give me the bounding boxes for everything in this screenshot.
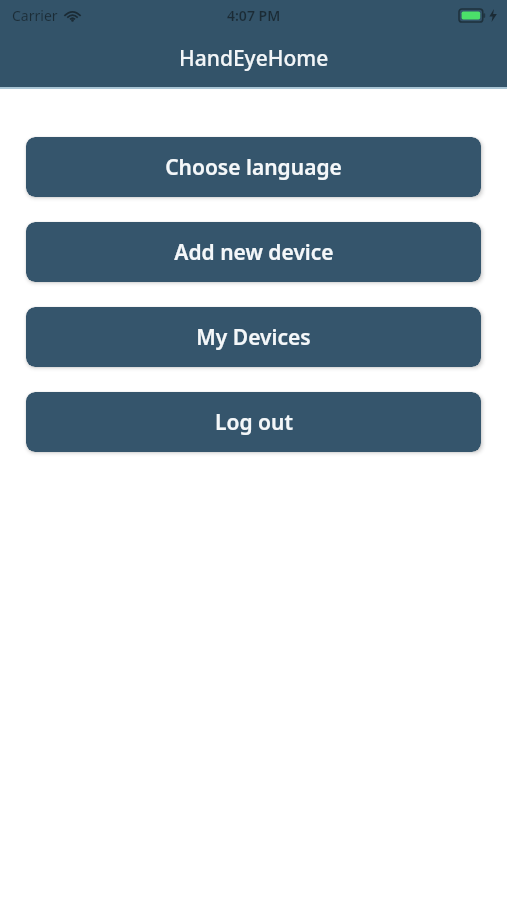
other: Wi-Fi xyxy=(64,9,81,22)
other: Charging xyxy=(489,9,497,22)
staticText: Choose language xyxy=(165,153,342,182)
button[interactable]: Add new device xyxy=(26,222,481,282)
button[interactable]: Log out xyxy=(26,392,481,452)
button[interactable]: Choose language xyxy=(26,137,481,197)
staticText: HandEyeHome xyxy=(179,44,329,73)
staticText: 4:07 PM xyxy=(227,6,281,25)
staticText: Add new device xyxy=(174,238,334,267)
button[interactable]: My Devices xyxy=(26,307,481,367)
staticText: My Devices xyxy=(196,323,311,352)
other: Battery xyxy=(459,9,486,22)
staticText: Carrier xyxy=(12,6,58,25)
staticText: Log out xyxy=(215,408,293,437)
